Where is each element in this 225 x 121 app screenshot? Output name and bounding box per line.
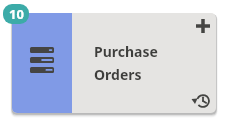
button[interactable]: History <box>187 85 216 113</box>
staticText: Purchase Orders <box>94 42 158 85</box>
button[interactable]: Add <box>187 13 216 42</box>
button[interactable]: Purchase Orders <box>12 13 72 113</box>
button[interactable]: 10 <box>3 4 29 24</box>
staticText: 10 <box>9 5 24 23</box>
